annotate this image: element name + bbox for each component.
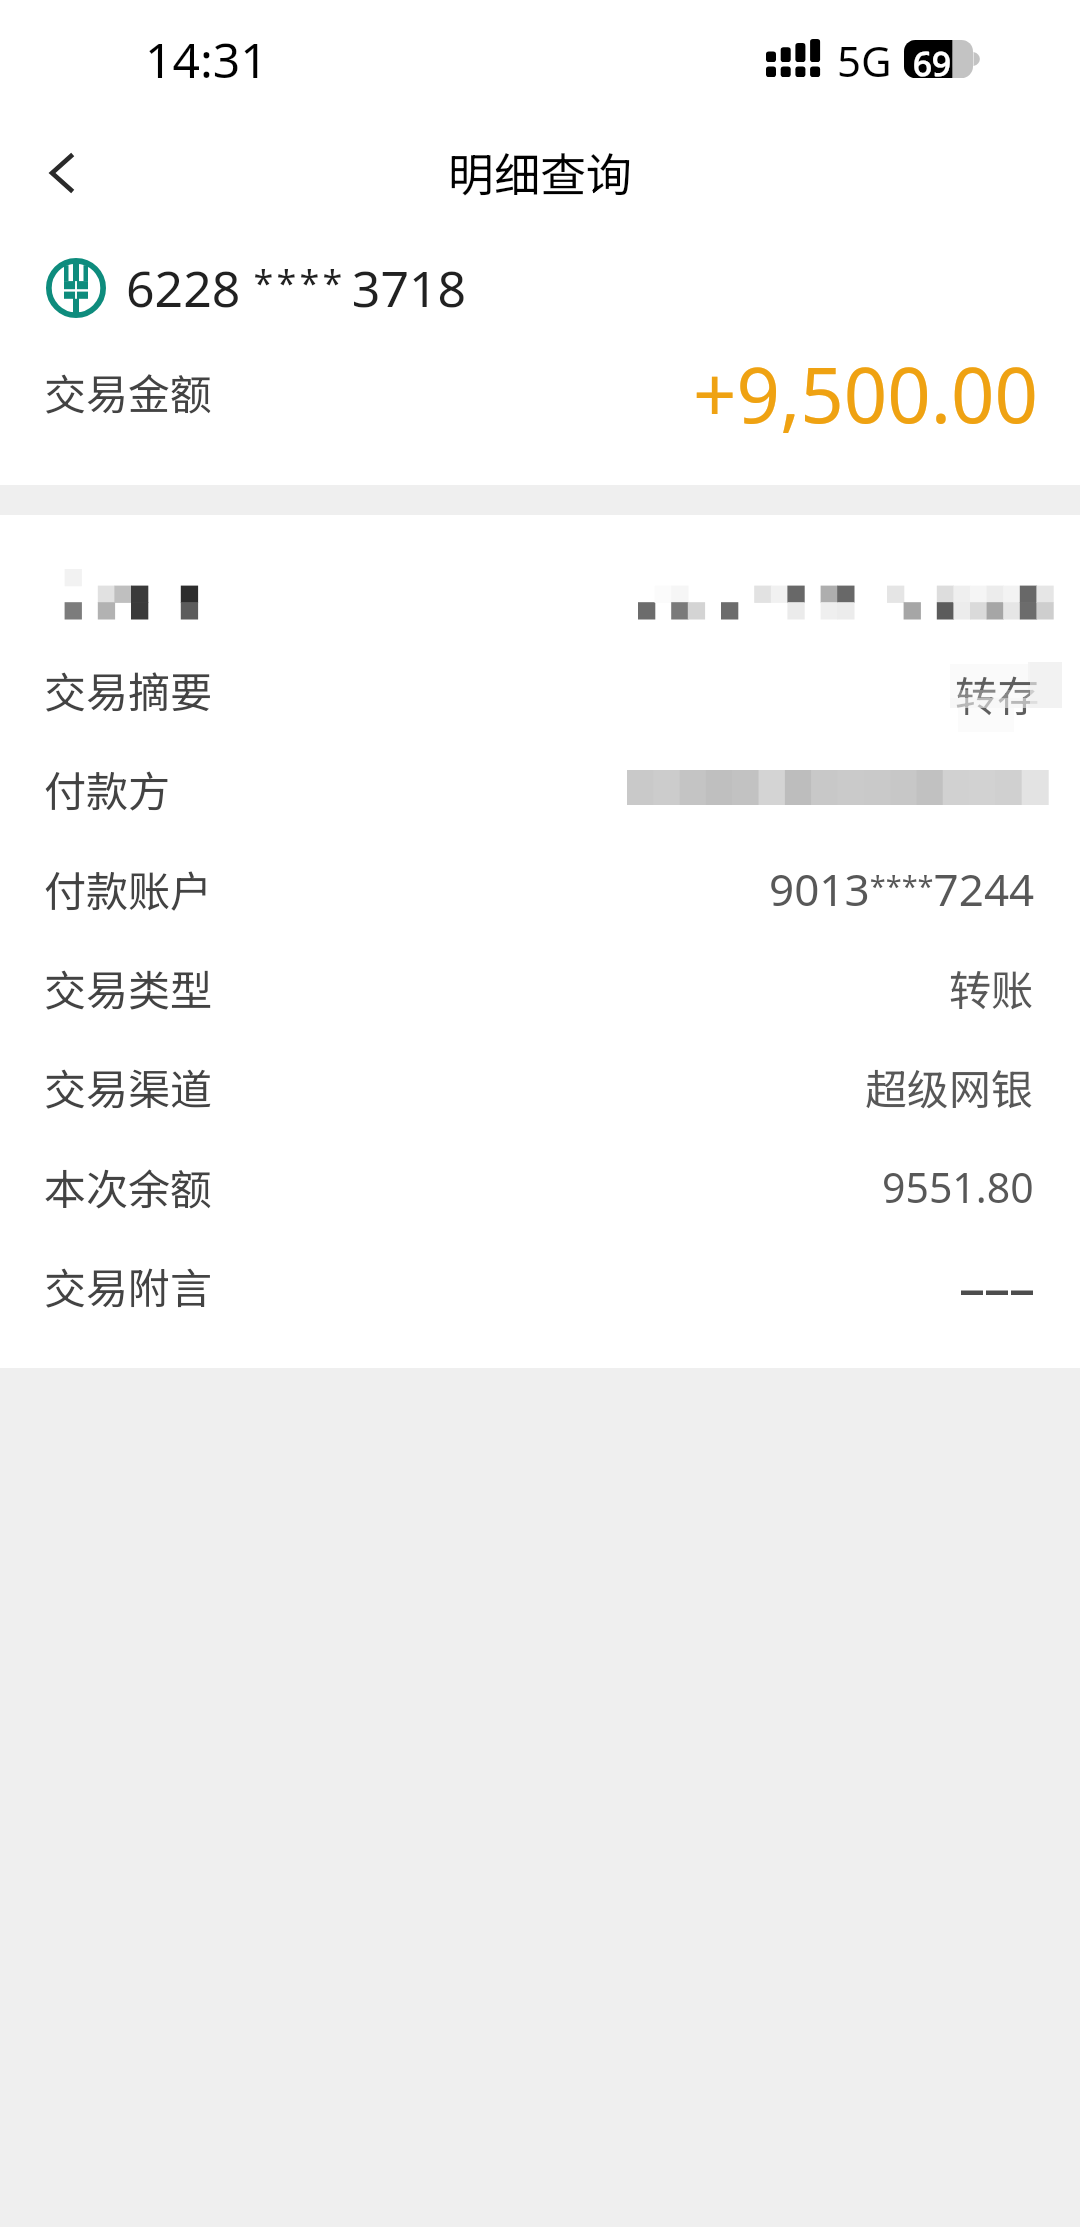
button[interactable]: 付款账户 (0, 839, 1080, 938)
staticText: 超级网银 (865, 1056, 1034, 1117)
staticText: 9013****7244 (769, 859, 1035, 919)
button[interactable]: 交易类型 (0, 938, 1080, 1037)
staticText: 转账 (949, 957, 1034, 1018)
staticText: +9,500.00 (693, 342, 1039, 446)
staticText: 交易摘要 (44, 659, 213, 720)
staticText: 6228 **** 3718 (126, 254, 467, 322)
staticText: 本次余额 (44, 1156, 213, 1217)
staticText: 转存 (955, 663, 1040, 724)
button[interactable]: 交易附言 (0, 1236, 1080, 1335)
staticText: 5G (837, 32, 892, 89)
staticText: 交易附言 (44, 1255, 213, 1316)
staticText: 交易类型 (44, 957, 213, 1018)
button[interactable]: Back (19, 132, 103, 214)
staticText: 9551.80 (882, 1159, 1034, 1215)
staticText: 付款方 (44, 758, 171, 819)
staticText: 明细查询 (448, 139, 632, 206)
staticText: 交易渠道 (44, 1056, 213, 1117)
staticText: 14:31 (145, 27, 268, 92)
button[interactable]: 付款方 (0, 739, 1080, 838)
staticText: 付款账户 (44, 858, 213, 919)
staticText: 交易金额 (44, 361, 213, 422)
button[interactable]: 交易渠道 (0, 1037, 1080, 1136)
button[interactable]: 本次余额 (0, 1137, 1080, 1236)
staticText: 69 (913, 41, 951, 86)
button[interactable]: 交易摘要 (0, 640, 1080, 739)
